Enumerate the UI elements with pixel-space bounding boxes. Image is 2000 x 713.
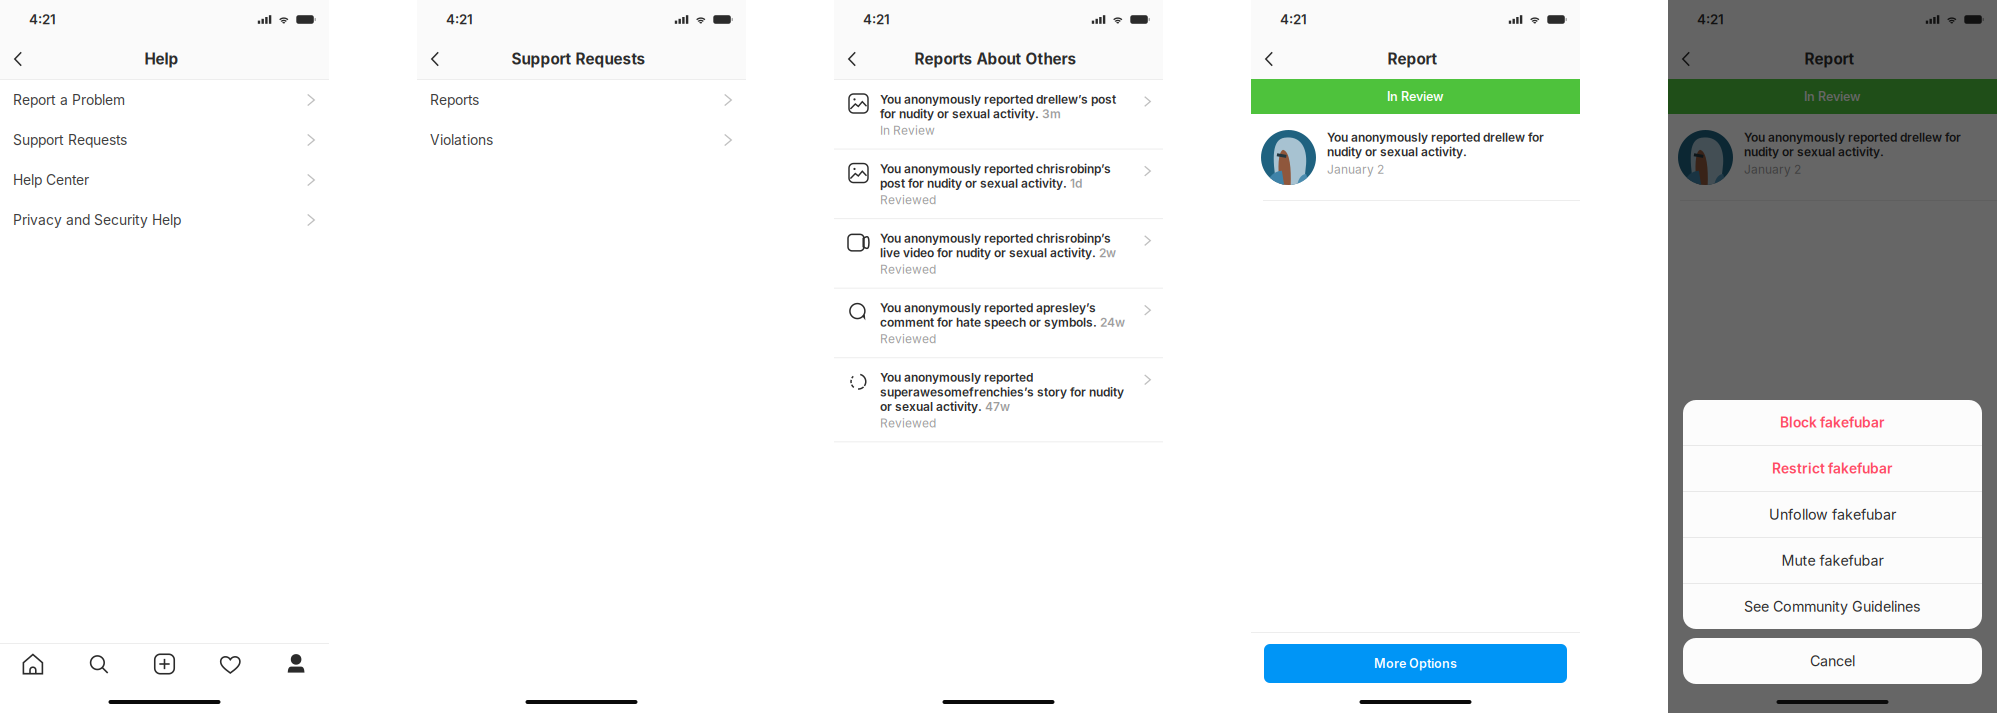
button[interactable]: Support Requests bbox=[0, 120, 329, 160]
staticText: Reports bbox=[430, 92, 479, 108]
staticText: Help bbox=[144, 50, 178, 68]
button[interactable]: You anonymously reported chrisrobinp’s p… bbox=[834, 150, 1163, 219]
button[interactable]: You anonymously reported drellew’s post … bbox=[834, 80, 1163, 150]
staticText: Reports About Others bbox=[914, 50, 1076, 68]
staticText: Reviewed bbox=[880, 332, 936, 346]
staticText: January 2 bbox=[1327, 162, 1384, 176]
staticText: You anonymously reported drellew for nud… bbox=[1744, 130, 1961, 159]
button[interactable]: Back bbox=[420, 39, 450, 79]
staticText: You anonymously reported drellew for nud… bbox=[1327, 130, 1544, 159]
staticText: In Review bbox=[880, 123, 935, 137]
button[interactable]: You anonymously reported apresley’s comm… bbox=[834, 289, 1163, 358]
button[interactable]: Profile bbox=[263, 644, 329, 684]
staticText: Help Center bbox=[13, 172, 89, 188]
staticText: 4:21 bbox=[863, 11, 890, 27]
staticText: Cancel bbox=[1810, 652, 1855, 670]
staticText: Report bbox=[1804, 50, 1854, 68]
staticText: 4:21 bbox=[1697, 11, 1724, 27]
staticText: See Community Guidelines bbox=[1744, 598, 1921, 615]
button[interactable]: Unfollow fakefubar bbox=[1683, 492, 1982, 537]
staticText: Mute fakefubar bbox=[1781, 552, 1883, 569]
button[interactable]: Block fakefubar bbox=[1683, 400, 1982, 445]
button[interactable]: Restrict fakefubar bbox=[1683, 446, 1982, 491]
staticText: Restrict fakefubar bbox=[1772, 460, 1893, 477]
button[interactable]: You anonymously reported chrisrobinp’s l… bbox=[834, 219, 1163, 289]
button[interactable]: More Options bbox=[1251, 633, 1580, 713]
button[interactable]: Activity bbox=[197, 644, 263, 684]
staticText: You anonymously reported chrisrobinp’s l… bbox=[880, 231, 1116, 260]
staticText: You anonymously reported chrisrobinp’s p… bbox=[880, 162, 1111, 191]
staticText: Report a Problem bbox=[13, 92, 125, 108]
staticText: Privacy and Security Help bbox=[13, 212, 181, 228]
staticText: In Review bbox=[1804, 89, 1861, 104]
staticText: Unfollow fakefubar bbox=[1769, 506, 1896, 523]
staticText: Block fakefubar bbox=[1780, 414, 1885, 431]
button[interactable]: See Community Guidelines bbox=[1683, 584, 1982, 629]
staticText: January 2 bbox=[1744, 162, 1801, 176]
button[interactable]: Home bbox=[0, 644, 66, 684]
staticText: 4:21 bbox=[1280, 11, 1307, 27]
staticText: Reviewed bbox=[880, 262, 936, 277]
staticText: In Review bbox=[1387, 89, 1444, 104]
button[interactable]: Help Center bbox=[0, 160, 329, 200]
staticText: 4:21 bbox=[29, 11, 56, 27]
staticText: Reviewed bbox=[880, 193, 936, 207]
staticText: You anonymously reported drellew’s post … bbox=[880, 92, 1116, 121]
button[interactable]: Violations bbox=[417, 120, 746, 160]
staticText: Support Requests bbox=[13, 132, 127, 148]
staticText: Support Requests bbox=[511, 50, 645, 68]
button[interactable]: Report a Problem bbox=[0, 80, 329, 120]
staticText: Violations bbox=[430, 132, 493, 148]
button[interactable]: New post bbox=[132, 644, 197, 684]
staticText: You anonymously reported apresley’s comm… bbox=[880, 301, 1125, 330]
staticText: Report bbox=[1387, 50, 1437, 68]
button[interactable]: Reports bbox=[417, 80, 746, 120]
button[interactable]: Back bbox=[1671, 39, 1701, 79]
staticText: 4:21 bbox=[446, 11, 473, 27]
staticText: Reviewed bbox=[880, 416, 936, 430]
button[interactable]: Privacy and Security Help bbox=[0, 200, 329, 240]
button[interactable]: Cancel bbox=[1668, 629, 1997, 684]
button[interactable]: Back bbox=[837, 39, 867, 79]
button[interactable]: Search bbox=[66, 644, 132, 684]
button[interactable]: Back bbox=[1254, 39, 1284, 79]
staticText: More Options bbox=[1374, 656, 1457, 671]
staticText: You anonymously reported superawesomefre… bbox=[880, 370, 1124, 414]
button[interactable]: Back bbox=[3, 39, 33, 79]
button[interactable]: You anonymously reported superawesomefre… bbox=[834, 358, 1163, 442]
button[interactable]: Mute fakefubar bbox=[1683, 538, 1982, 583]
